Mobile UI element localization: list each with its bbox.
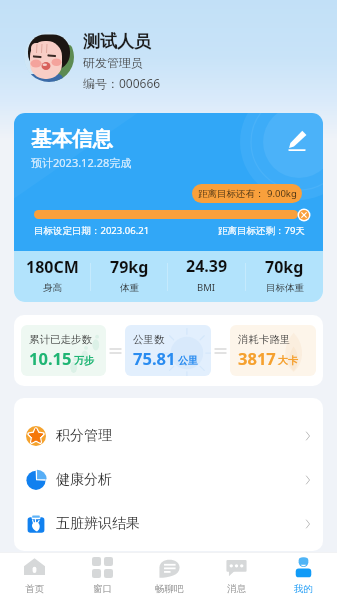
staticText: 编号：000666 [83,75,161,91]
staticText: 180CM [26,256,79,278]
button[interactable]: 首页 [0,552,68,600]
staticText: 万步 [74,354,94,367]
staticText: 五脏辨识结果 [56,515,140,533]
staticText: 累计已走步数 [29,333,92,346]
staticText: 首页 [25,583,44,595]
staticText: 测试人员 [83,31,151,52]
staticText: BMI [197,281,216,294]
staticText: 目标设定日期：2023.06.21 [34,224,150,237]
staticText: 身高 [43,282,62,294]
staticText: 健康分析 [56,471,112,489]
staticText: 窗口 [93,583,112,595]
button[interactable]: 我的 [270,552,337,600]
button[interactable]: 积分管理 [14,414,323,458]
staticText: 研发管理员 [83,55,143,70]
button[interactable]: 窗口 [68,552,136,600]
staticText: 体重 [120,282,139,294]
button[interactable]: 健康分析 [14,458,323,502]
staticText: 79kg [110,256,149,278]
staticText: 目标体重 [266,282,304,294]
staticText: 基本信息 [31,126,113,152]
staticText: 预计2023.12.28完成 [31,155,132,170]
staticText: 24.39 [186,255,228,277]
button[interactable]: 消息 [203,552,270,600]
staticText: 我的 [294,583,313,595]
staticText: 3817 [238,347,276,369]
button[interactable]: 编辑 [286,129,308,151]
button[interactable]: 五脏辨识结果 [14,502,323,546]
staticText: 70kg [265,256,304,278]
staticText: 畅聊吧 [155,583,184,595]
staticText: 积分管理 [56,427,112,445]
staticText: 消息 [227,583,246,595]
staticText: 大卡 [278,354,298,367]
staticText: 消耗卡路里 [238,333,291,346]
staticText: 公里 [178,354,198,367]
staticText: 距离目标还剩：79天 [218,224,305,237]
staticText: 距离目标还有： 9.00kg [198,187,297,200]
staticText: 10.15 [29,347,72,369]
staticText: 公里数 [133,333,165,346]
staticText: 75.81 [133,347,176,369]
button[interactable]: 头像 [24,32,74,82]
button[interactable]: 畅聊吧 [136,552,203,600]
